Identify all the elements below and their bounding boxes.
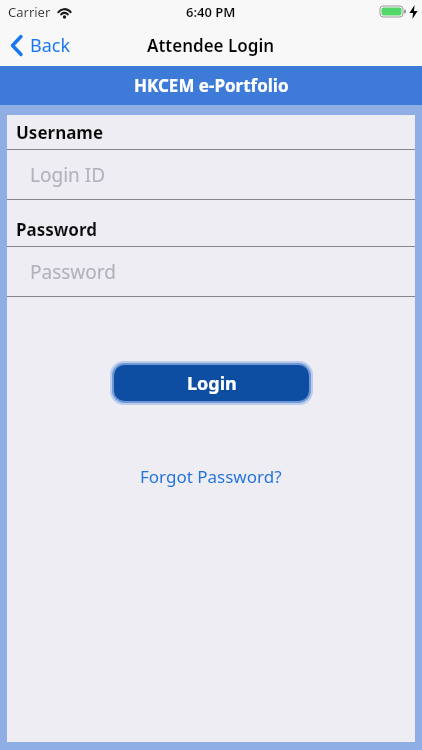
button[interactable]: Login xyxy=(114,365,309,401)
staticText: Password xyxy=(30,259,116,285)
staticText: Forgot Password? xyxy=(140,465,282,488)
button[interactable]: Login ID xyxy=(7,150,415,199)
staticText: Password xyxy=(16,218,97,241)
staticText: Login xyxy=(187,371,237,396)
staticText: Back xyxy=(30,33,71,58)
button[interactable]: Back xyxy=(10,33,71,58)
button[interactable]: Forgot Password? xyxy=(140,465,282,488)
staticText: 6:40 PM xyxy=(186,3,236,21)
button[interactable]: Password xyxy=(7,247,415,296)
staticText: Attendee Login xyxy=(147,34,275,57)
staticText: Carrier xyxy=(8,3,51,21)
staticText: HKCEM e-Portfolio xyxy=(134,74,289,97)
staticText: Login ID xyxy=(30,162,106,188)
staticText: Username xyxy=(16,121,104,144)
